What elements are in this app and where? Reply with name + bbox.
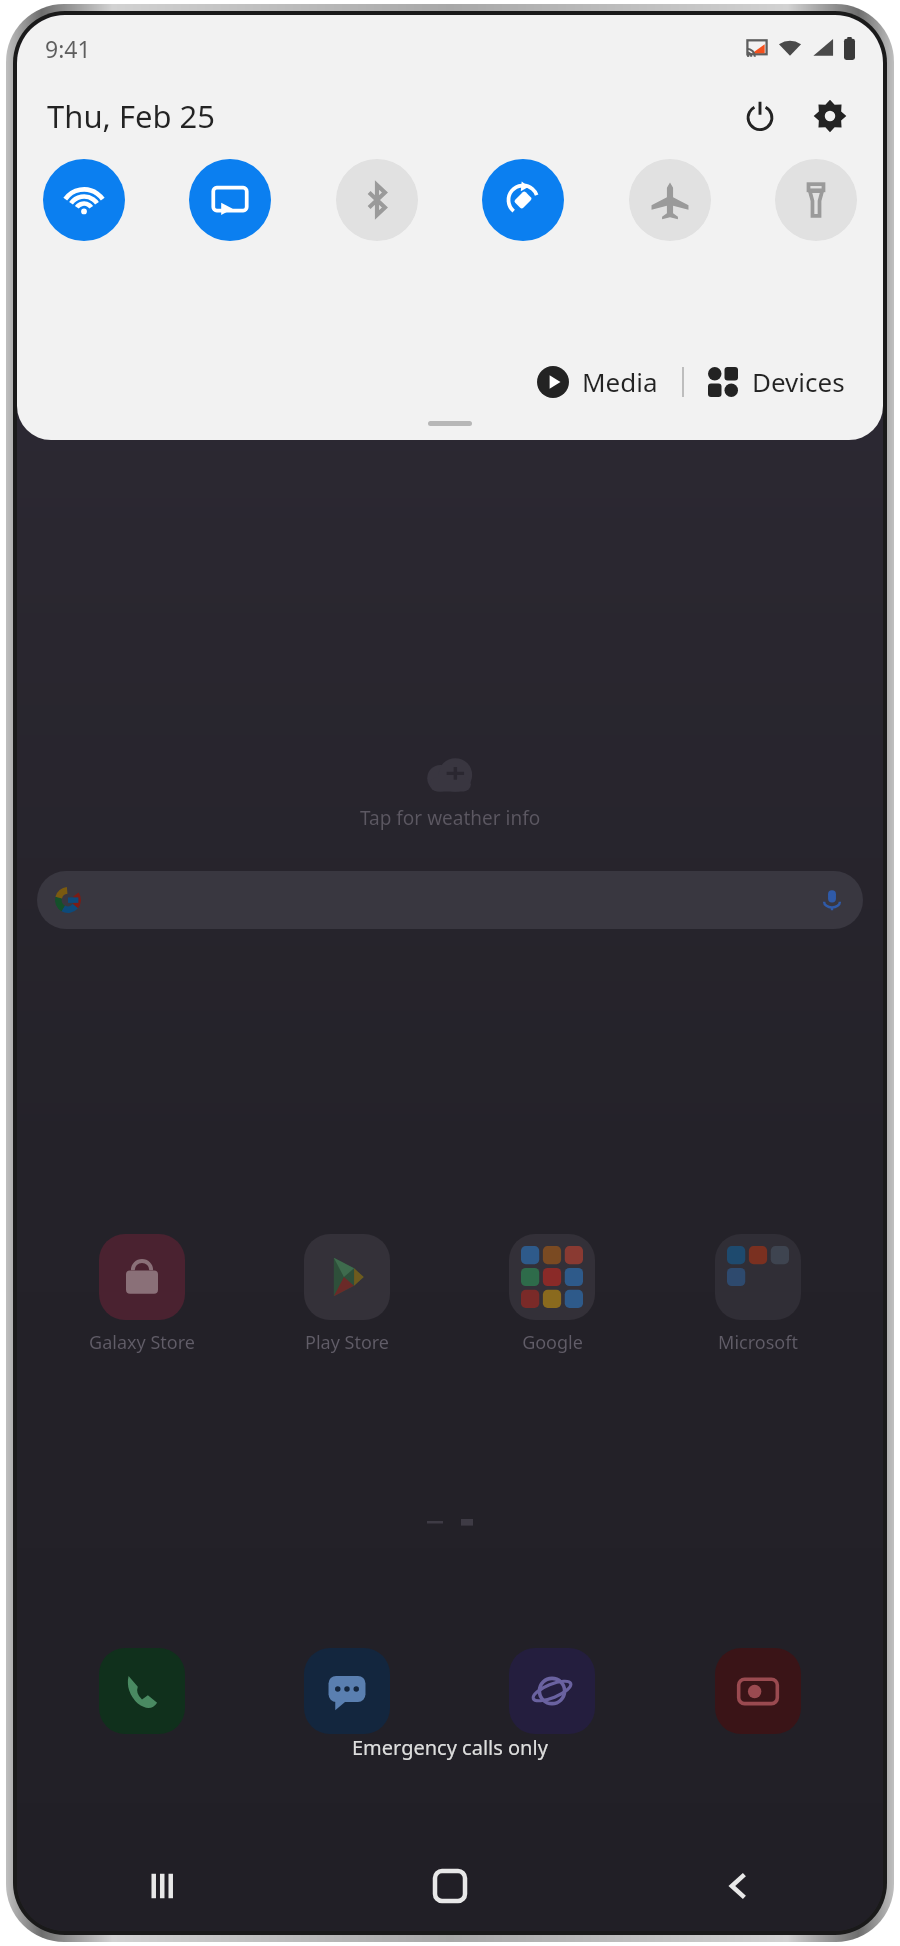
staticText: Galaxy Store bbox=[89, 1330, 195, 1355]
button[interactable]: Settings bbox=[801, 87, 859, 145]
staticText: Media bbox=[582, 364, 658, 399]
button[interactable] bbox=[244, 1648, 449, 1734]
staticText: Tap for weather info bbox=[360, 805, 541, 831]
staticText: Devices bbox=[752, 364, 845, 399]
button[interactable] bbox=[37, 871, 863, 929]
button[interactable]: Collapse panel bbox=[428, 421, 472, 426]
button[interactable]: Google bbox=[449, 1234, 655, 1355]
button[interactable]: Play Store bbox=[244, 1234, 449, 1355]
button[interactable]: Airplane mode bbox=[629, 159, 711, 241]
button[interactable]: Auto rotate bbox=[482, 159, 564, 241]
button[interactable] bbox=[449, 1648, 655, 1734]
button[interactable] bbox=[655, 1648, 861, 1734]
button[interactable] bbox=[39, 1648, 244, 1734]
button[interactable]: Bluetooth bbox=[336, 159, 418, 241]
button[interactable]: Devices bbox=[702, 358, 851, 405]
staticText: Emergency calls only bbox=[352, 1734, 548, 1761]
button[interactable]: Microsoft bbox=[655, 1234, 861, 1355]
staticText: 9:41 bbox=[45, 33, 91, 64]
staticText: Google bbox=[522, 1330, 583, 1355]
button[interactable]: Wi-Fi bbox=[43, 159, 125, 241]
button[interactable]: Power bbox=[731, 87, 789, 145]
staticText: Microsoft bbox=[718, 1330, 798, 1355]
staticText: Play Store bbox=[305, 1330, 389, 1355]
button[interactable]: Smart View bbox=[189, 159, 271, 241]
button[interactable]: Media bbox=[530, 358, 664, 405]
button[interactable]: Flashlight bbox=[775, 159, 857, 241]
button[interactable]: Home bbox=[305, 1855, 594, 1917]
button[interactable]: Back bbox=[594, 1855, 883, 1917]
button[interactable]: Recents bbox=[17, 1855, 305, 1917]
button[interactable]: Thu, Feb 25 bbox=[47, 95, 216, 137]
button[interactable]: Galaxy Store bbox=[39, 1234, 244, 1355]
